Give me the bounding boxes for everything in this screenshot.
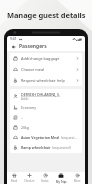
staticText: 9:41 [10,37,17,41]
staticText: Manage guest details [7,10,86,20]
staticText: Passengers [19,43,47,50]
button[interactable]: Choose meal [10,64,82,75]
button[interactable]: Ramp wheelchair [10,142,82,152]
staticText: 20kg [21,125,30,130]
button[interactable]: Economy [10,102,82,112]
staticText: Check-in [24,179,35,183]
staticText: Ramp wheelchair [21,145,51,150]
button[interactable]: DERVISH DHLAMINI, S. [10,90,82,102]
staticText: My Trips [56,180,67,184]
button[interactable]: 20kg [10,122,82,132]
staticText: More [74,179,81,183]
button[interactable]: More [69,172,85,184]
staticText: Add/change baggage [21,56,76,61]
staticText: (requested) [60,135,79,140]
staticText: Status [41,179,49,183]
button[interactable]: Status [37,172,53,184]
staticText: Asian Vegetarian Meal [21,135,60,140]
staticText: (requested) [51,145,71,150]
staticText: DERVISH DHLAMINI, S. [21,92,61,97]
staticText: – [21,115,23,120]
button[interactable]: Asian Vegetarian Meal [10,132,82,142]
button[interactable]: Book [7,172,22,184]
button[interactable]: Add/change baggage [10,53,82,64]
staticText: Request wheelchair help [21,78,76,83]
button[interactable]: Request wheelchair help [10,75,82,86]
button[interactable]: Back [10,43,17,50]
button[interactable]: Check-in [22,172,37,184]
staticText: Adult [21,97,29,101]
button[interactable]: My Trips [53,172,69,184]
button[interactable]: – [10,112,82,122]
staticText: Book [11,179,18,183]
staticText: Choose meal [21,67,76,72]
staticText: Economy [21,105,37,110]
